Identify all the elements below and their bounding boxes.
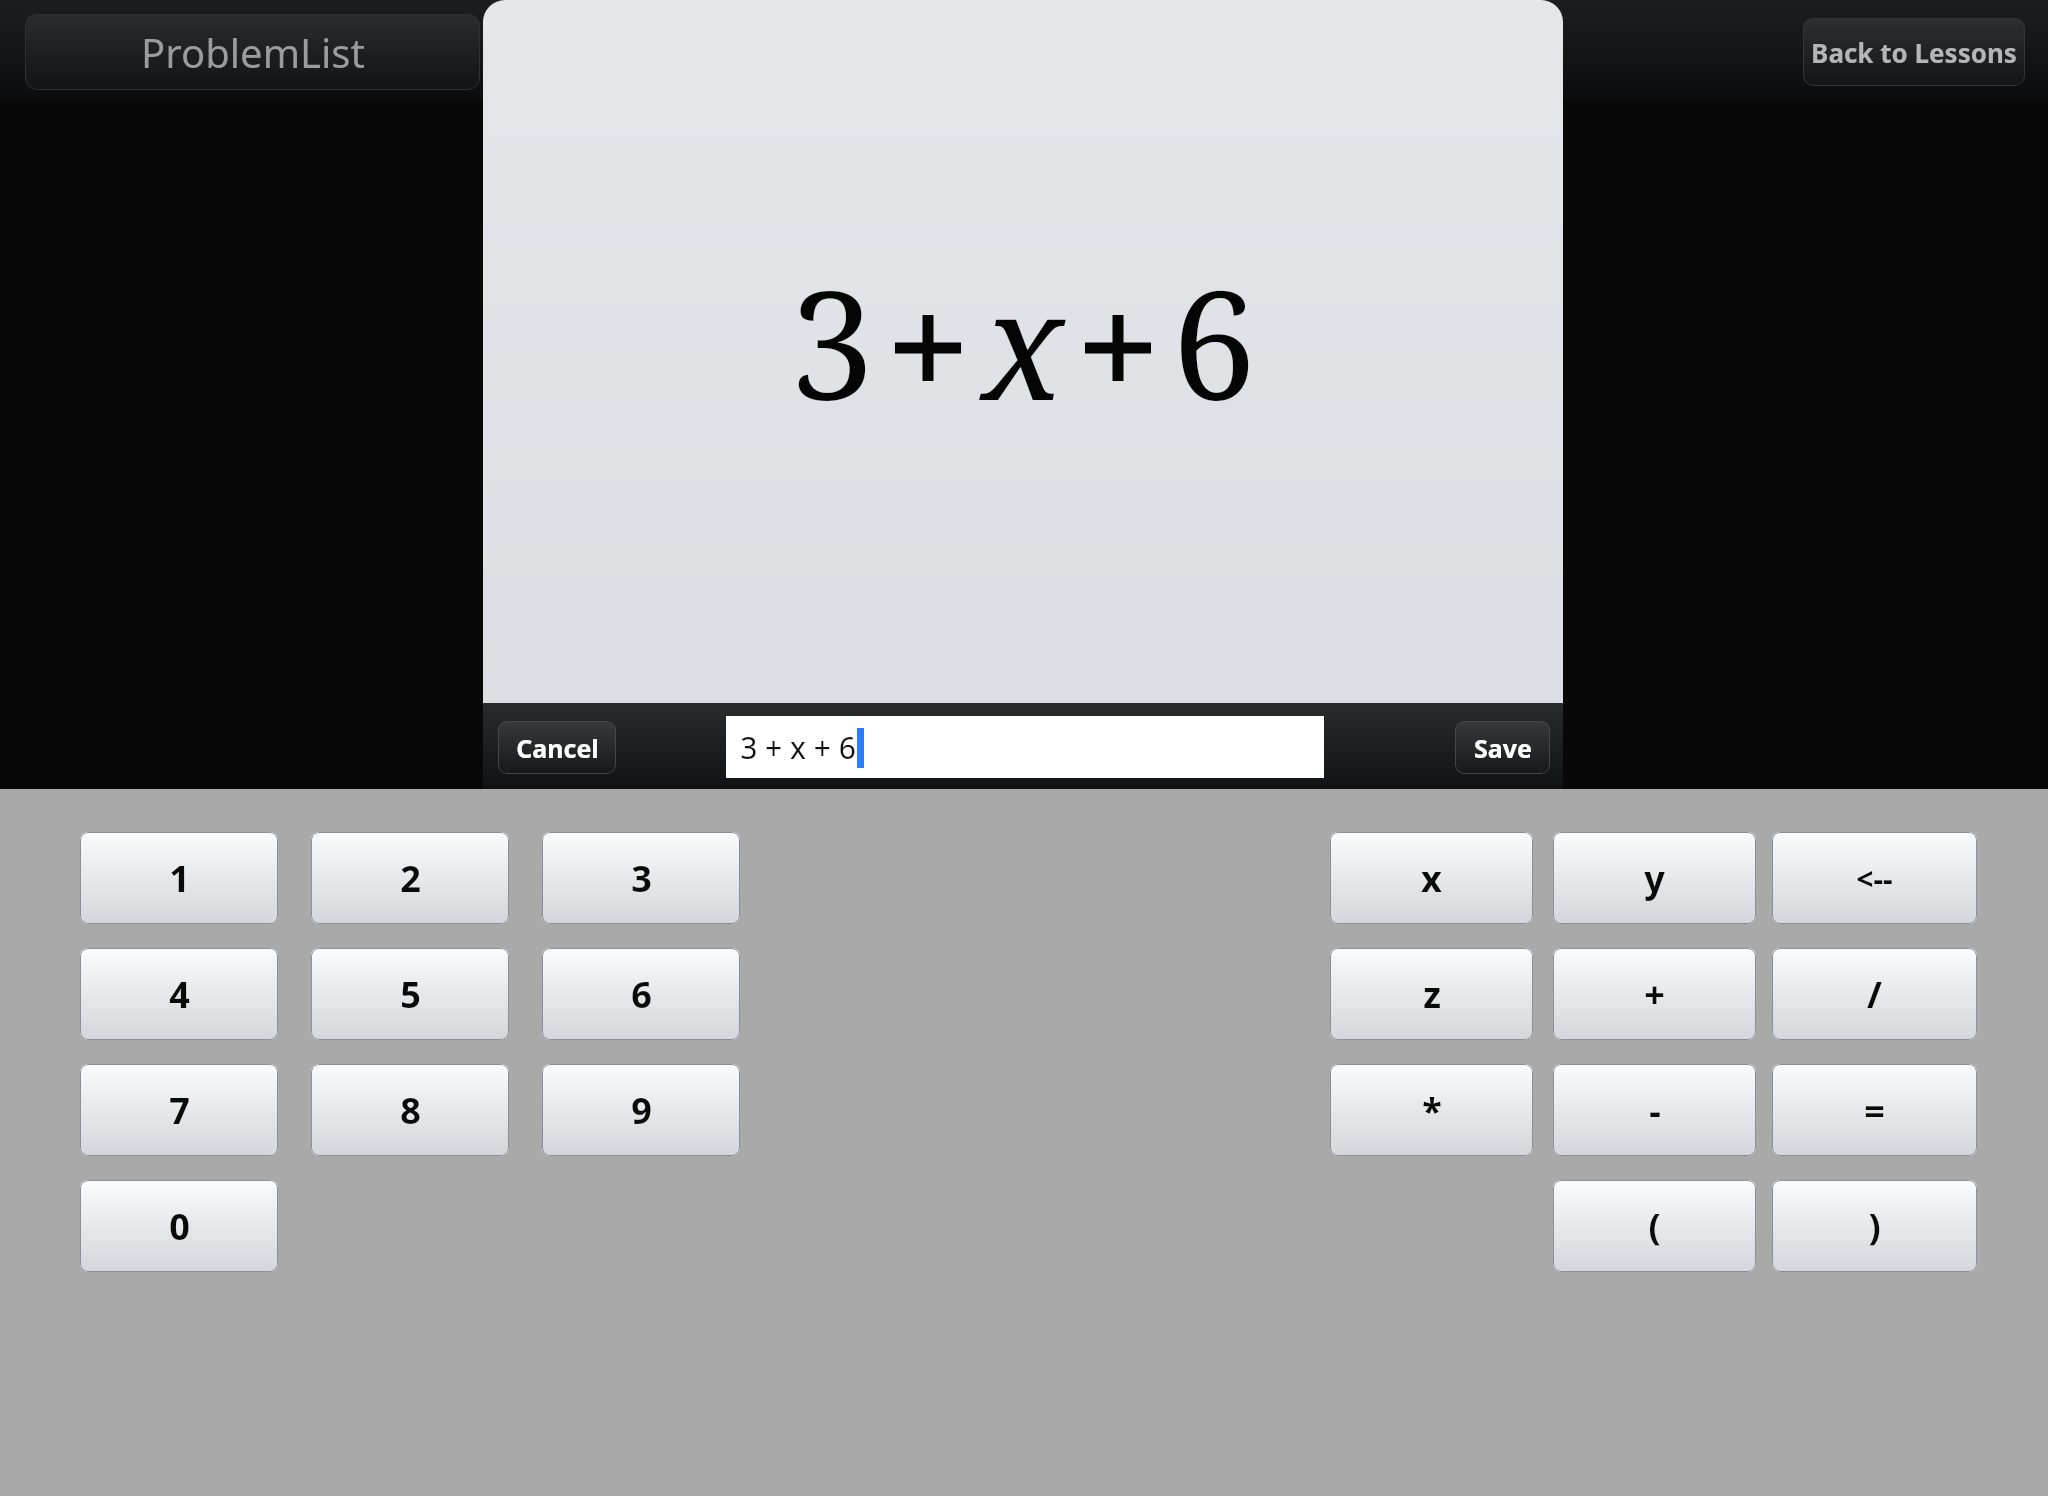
button[interactable]: 2: [311, 832, 509, 924]
button[interactable]: 0: [80, 1180, 278, 1272]
staticText: <--: [1856, 858, 1893, 899]
button[interactable]: 5: [311, 948, 509, 1040]
button[interactable]: Save: [1455, 721, 1550, 774]
staticText: /: [1867, 970, 1882, 1019]
staticText: x: [1421, 854, 1442, 903]
staticText: ProblemList: [141, 25, 365, 79]
staticText: 2: [400, 854, 421, 903]
staticText: (: [1648, 1202, 1661, 1251]
button[interactable]: (: [1553, 1180, 1756, 1272]
button[interactable]: ): [1772, 1180, 1977, 1272]
button[interactable]: 7: [80, 1064, 278, 1156]
button[interactable]: +: [1553, 948, 1756, 1040]
staticText: =: [1864, 1086, 1885, 1135]
button[interactable]: 3: [542, 832, 740, 924]
staticText: y: [1644, 854, 1665, 903]
staticText: ): [1868, 1202, 1881, 1251]
button[interactable]: 9: [542, 1064, 740, 1156]
button[interactable]: /: [1772, 948, 1977, 1040]
button[interactable]: -: [1553, 1064, 1756, 1156]
button[interactable]: 4: [80, 948, 278, 1040]
staticText: Save: [1474, 731, 1532, 765]
staticText: Cancel: [516, 731, 599, 765]
staticText: 4: [169, 970, 190, 1019]
button[interactable]: =: [1772, 1064, 1977, 1156]
staticText: 1: [169, 854, 190, 903]
button[interactable]: ProblemList: [25, 14, 480, 90]
button[interactable]: Back to Lessons: [1803, 18, 2025, 86]
button[interactable]: Cancel: [498, 721, 616, 774]
staticText: 9: [631, 1086, 652, 1135]
button[interactable]: 6: [542, 948, 740, 1040]
staticText: 6: [631, 970, 652, 1019]
staticText: 5: [400, 970, 421, 1019]
staticText: 0: [169, 1202, 190, 1251]
button[interactable]: *: [1330, 1064, 1533, 1156]
button[interactable]: 8: [311, 1064, 509, 1156]
staticText: 8: [400, 1086, 421, 1135]
staticText: Back to Lessons: [1811, 35, 2017, 70]
button[interactable]: <--: [1772, 832, 1977, 924]
staticText: 6: [1172, 240, 1256, 444]
staticText: 3: [790, 240, 874, 444]
button[interactable]: 3 + x + 6: [726, 716, 1324, 778]
button[interactable]: x: [1330, 832, 1533, 924]
button[interactable]: z: [1330, 948, 1533, 1040]
button[interactable]: y: [1553, 832, 1756, 924]
staticText: 3: [631, 854, 652, 903]
staticText: 3 + x + 6: [740, 727, 856, 768]
staticText: 7: [169, 1086, 190, 1135]
staticText: *: [1422, 1086, 1442, 1135]
button[interactable]: 1: [80, 832, 278, 924]
staticText: x: [982, 240, 1064, 444]
staticText: +: [1644, 970, 1665, 1019]
staticText: -: [1649, 1086, 1661, 1135]
staticText: z: [1423, 970, 1441, 1019]
